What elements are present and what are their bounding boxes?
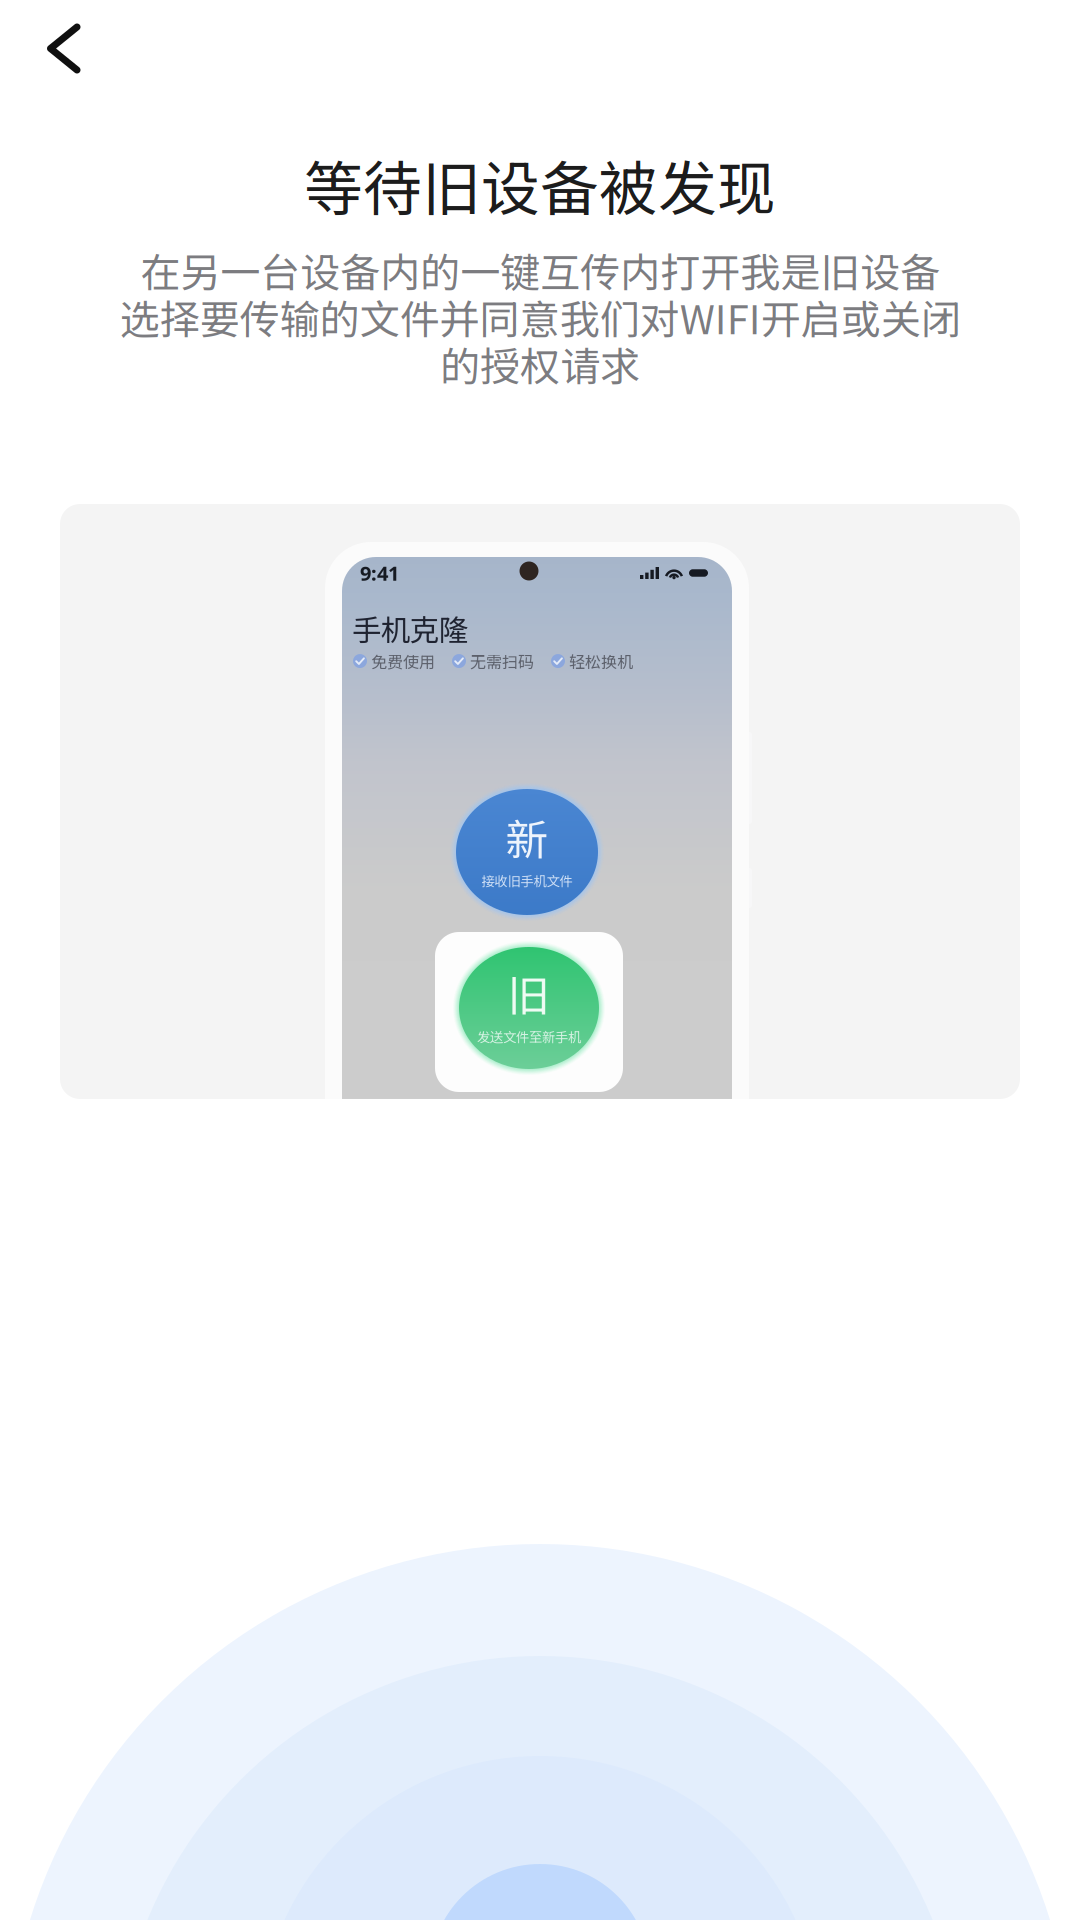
- staticText: 无需扫码: [470, 649, 534, 673]
- staticText: 在另一台设备内的一键互传内打开我是旧设备 选择要传输的文件并同意我们对WIFI开…: [119, 241, 960, 393]
- staticText: 等待旧设备被发现: [304, 142, 776, 227]
- staticText: 接收旧手机文件: [481, 871, 572, 890]
- staticText: 手机克隆: [352, 607, 468, 649]
- staticText: 发送文件至新手机: [477, 1027, 581, 1046]
- staticText: 新: [505, 806, 548, 868]
- staticText: 轻松换机: [569, 649, 633, 673]
- staticText: 9:41: [360, 560, 399, 586]
- staticText: 旧: [507, 962, 550, 1024]
- button[interactable]: 返回: [0, 0, 110, 92]
- staticText: 免费使用: [371, 649, 435, 673]
